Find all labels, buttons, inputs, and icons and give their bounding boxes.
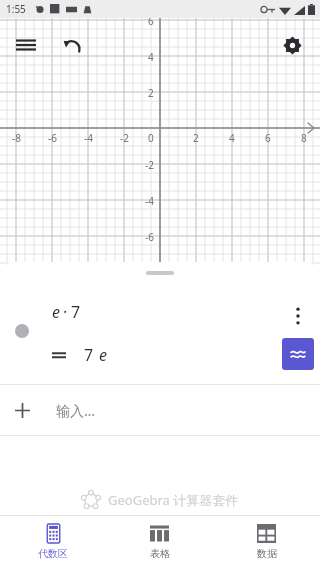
staticText: 代数区 <box>38 547 68 560</box>
staticText: -6 <box>145 230 154 244</box>
button[interactable]: Add expression <box>0 385 320 435</box>
staticText: 0 <box>148 131 154 145</box>
staticText: -4 <box>84 131 93 145</box>
button[interactable]: More options <box>280 298 316 334</box>
button[interactable]: Undo <box>52 25 92 65</box>
staticText: 7 <box>84 344 94 366</box>
staticText: 7 <box>71 301 81 323</box>
staticText: 输入… <box>56 401 96 420</box>
other: Add expression <box>8 396 36 424</box>
button[interactable]: 表格 <box>106 516 213 568</box>
staticText: 2 <box>193 131 199 145</box>
staticText: -2 <box>120 131 129 145</box>
staticText: · <box>63 301 68 323</box>
staticText: 表格 <box>150 547 170 560</box>
staticText: -8 <box>12 131 21 145</box>
button[interactable]: 代数区 <box>0 516 106 568</box>
staticText: -4 <box>145 194 154 208</box>
staticText: 6 <box>148 14 154 28</box>
staticText: 8 <box>301 131 307 145</box>
button[interactable]: Settings <box>272 25 312 65</box>
staticText: 数据 <box>257 547 277 560</box>
staticText: 1:55 <box>6 2 26 16</box>
staticText: -2 <box>145 158 154 172</box>
staticText: 2 <box>148 86 154 100</box>
button[interactable]: Menu <box>6 25 46 65</box>
button[interactable]: Approximate <box>282 338 314 370</box>
staticText: GeoGebra 计算器套件 <box>108 491 239 509</box>
staticText: 4 <box>148 50 154 64</box>
staticText: e <box>52 301 60 323</box>
staticText: e <box>99 344 107 366</box>
staticText: -6 <box>48 131 57 145</box>
staticText: 6 <box>265 131 271 145</box>
button[interactable]: e <box>0 278 320 384</box>
button[interactable]: 数据 <box>213 516 320 568</box>
staticText: 4 <box>229 131 235 145</box>
